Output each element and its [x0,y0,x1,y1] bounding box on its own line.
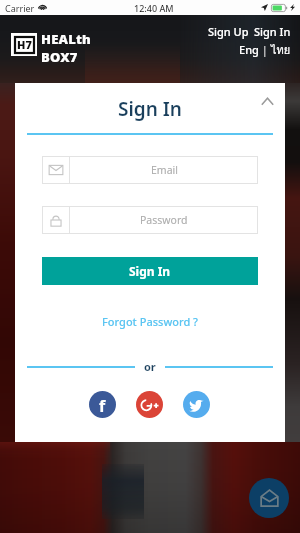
staticText: | [259,42,271,57]
staticText: ไทย [271,41,291,58]
button[interactable]: Eng [239,42,259,57]
staticText: Password [140,213,188,227]
staticText: or [144,359,156,374]
button[interactable]: Google [136,391,163,418]
button[interactable]: ไทย [271,41,291,58]
staticText: Sign In [254,24,291,39]
staticText: BOX7 [41,48,78,66]
staticText: f [99,395,106,417]
button[interactable]: Facebook [89,391,116,418]
button[interactable]: Messages [249,478,289,518]
button[interactable]: Twitter [183,391,210,418]
staticText: HEALth [41,30,91,48]
staticText: Email [151,163,178,177]
staticText: Eng [239,42,259,57]
button[interactable]: Email [42,156,258,184]
staticText: Sign Up [208,24,249,39]
staticText: Carrier [5,2,35,14]
button[interactable]: Forgot Password ? [100,313,201,330]
button[interactable]: Password [42,206,258,234]
staticText: H7 [17,37,32,52]
button[interactable]: Collapse [256,90,278,112]
staticText: Sign In [118,96,182,122]
staticText: Sign In [129,263,171,279]
button[interactable]: Sign Up [208,24,249,39]
staticText: Forgot Password ? [102,314,199,329]
staticText: 12:40 AM [134,2,174,14]
button[interactable]: Sign In [254,24,291,39]
button[interactable]: Sign In [42,257,258,285]
